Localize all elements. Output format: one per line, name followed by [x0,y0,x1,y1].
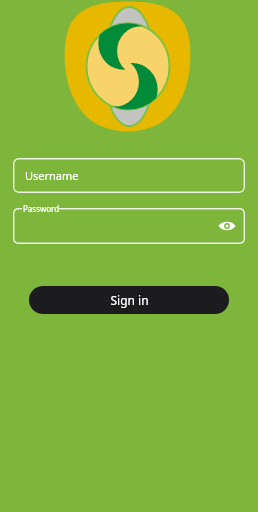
staticText: Username [25,168,79,183]
button[interactable]: Password [13,208,245,244]
button[interactable]: Show password [216,215,238,237]
button[interactable]: Sign in [29,286,229,314]
staticText: Sign in [110,292,149,308]
button[interactable]: Username [13,158,245,193]
staticText: Password [23,203,60,214]
